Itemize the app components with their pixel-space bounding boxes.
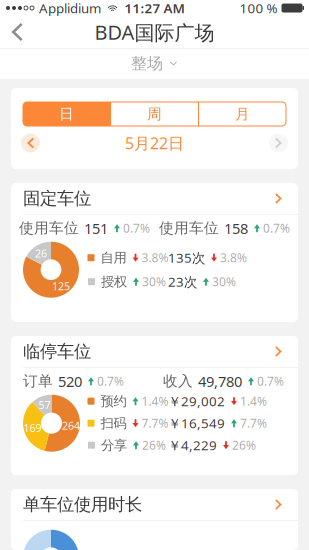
staticText: 5月22日 [125,132,184,154]
button[interactable]: Back [2,17,32,47]
staticText: 1.4% [240,393,267,409]
staticText: ￥16,549 [168,414,225,432]
button[interactable]: 月 [199,102,286,126]
staticText: 扫码 [100,415,126,431]
staticText: 日 [59,105,74,123]
staticText: 0.7% [257,373,284,389]
staticText: 自用 [100,249,126,266]
staticText: 49,780 [198,371,242,391]
staticText: 3.8% [220,250,247,266]
staticText: 30% [212,274,236,290]
staticText: 预约 [100,393,126,409]
staticText: 0.7% [97,373,124,389]
staticText: ￥4,229 [168,436,217,454]
staticText: 使用车位 [19,219,79,237]
staticText: 100 % [239,0,277,17]
staticText: 3.8% [141,250,168,266]
button[interactable]: 单车位使用时长 [11,489,298,520]
button[interactable]: 日 [23,102,110,126]
staticText: ￥29,002 [168,392,225,410]
staticText: 授权 [101,273,127,290]
staticText: 周 [147,105,162,123]
staticText: 520 [58,371,82,391]
staticText: 7.7% [240,415,267,431]
button[interactable]: 整场 [0,48,309,78]
button[interactable]: 临停车位 [11,336,298,367]
staticText: 分享 [101,437,127,453]
button[interactable]: Previous day [21,133,40,152]
button[interactable]: 固定车位 [11,183,298,214]
staticText: BDA国际广场 [94,19,214,45]
staticText: 单车位使用时长 [23,494,142,515]
staticText: 264 [62,418,80,433]
staticText: 7.7% [141,415,168,431]
staticText: 固定车位 [23,188,91,209]
staticText: 整场 [131,54,163,73]
button[interactable]: Next day [269,133,288,152]
staticText: 23次 [168,273,197,290]
staticText: 收入 [163,372,193,390]
staticText: 使用车位 [159,219,219,237]
staticText: 0.7% [123,220,150,236]
staticText: 169 [24,421,42,435]
staticText: 26% [232,437,256,453]
staticText: 30% [142,274,166,290]
staticText: 158 [224,218,248,238]
staticText: 135次 [168,249,205,266]
staticText: 临停车位 [23,341,91,362]
staticText: 26 [35,246,47,260]
staticText: Applidium [39,0,101,17]
staticText: 1.4% [141,393,168,409]
staticText: 0.7% [263,220,290,236]
button[interactable]: 周 [111,102,198,126]
staticText: 125 [52,279,70,293]
staticText: 11:27 AM [124,0,184,17]
staticText: 月 [235,105,250,123]
staticText: 26% [142,437,166,453]
staticText: 订单 [23,372,53,390]
staticText: 151 [84,218,108,238]
staticText: 57 [38,398,50,412]
